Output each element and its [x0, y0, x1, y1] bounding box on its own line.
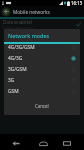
staticText: Enable data access	[3, 25, 33, 29]
button[interactable]: 4G/3G/GSM	[4, 42, 80, 53]
staticText: 3G/GSM	[8, 66, 27, 73]
button[interactable]: Navigate up	[0, 6, 12, 17]
button[interactable]: 4G/3G	[4, 53, 80, 64]
staticText: GSM	[8, 88, 19, 95]
staticText: Network modes	[8, 32, 50, 39]
staticText: Cancel	[35, 103, 49, 109]
button[interactable]: Back	[8, 134, 24, 150]
staticText: 4G/3G/GSM	[8, 44, 35, 51]
button[interactable]: Cancel	[30, 101, 54, 111]
button[interactable]: 3G/GSM	[4, 64, 80, 75]
button[interactable]: GSM	[4, 86, 80, 97]
staticText: Data enabled	[3, 19, 32, 25]
staticText: Mobile networks	[13, 9, 50, 15]
staticText: 16:15	[71, 0, 83, 6]
button[interactable]: 3G	[4, 75, 80, 86]
staticText: 4G/3G	[8, 55, 23, 62]
staticText: 3G	[8, 77, 15, 84]
button[interactable]: Recent apps	[59, 134, 75, 150]
button[interactable]: Home	[35, 134, 51, 150]
button[interactable]: Data enabled	[0, 19, 84, 29]
